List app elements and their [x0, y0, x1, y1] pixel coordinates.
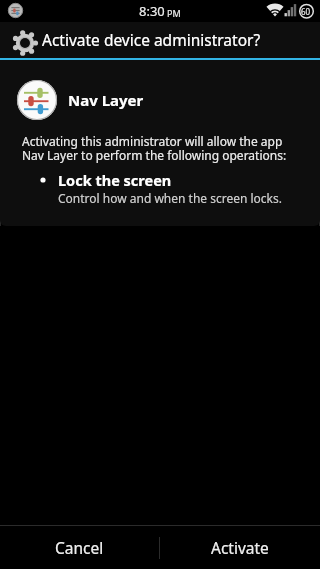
staticText: 60	[301, 6, 311, 17]
staticText: Control how and when the screen locks.	[58, 190, 282, 206]
button[interactable]: Cancel	[0, 526, 159, 569]
button[interactable]: Activate	[160, 526, 320, 569]
staticText: Activate	[211, 537, 269, 558]
staticText: Activating this administrator will allow…	[22, 133, 287, 164]
staticText: 8:30	[139, 2, 165, 20]
staticText: Cancel	[55, 537, 104, 558]
staticText: Nav Layer	[68, 90, 144, 110]
staticText: Activate device administrator?	[42, 29, 261, 50]
staticText: PM	[167, 7, 181, 19]
staticText: Lock the screen	[58, 170, 172, 190]
